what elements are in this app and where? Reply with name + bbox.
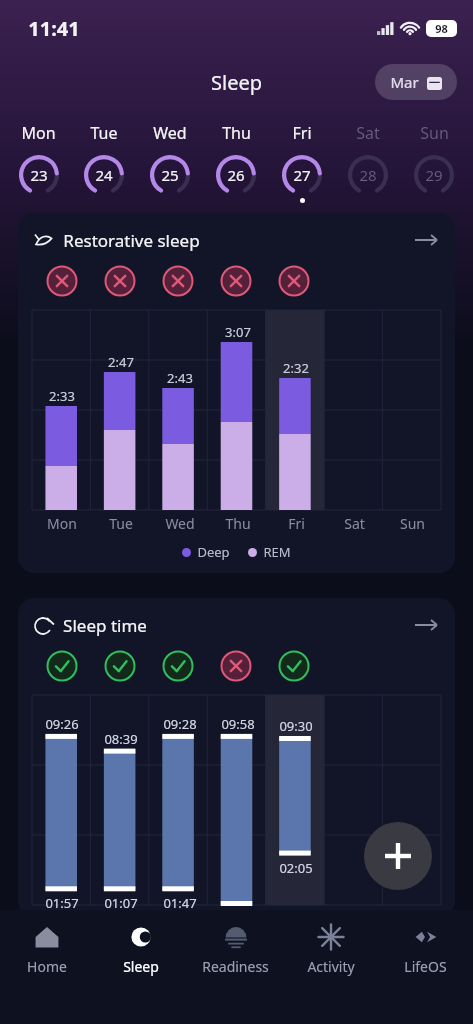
staticText: 2:43 — [167, 369, 193, 387]
staticText: Sat — [344, 514, 365, 533]
staticText: Thu — [222, 122, 251, 144]
staticText: 01:07 — [104, 894, 138, 912]
staticText: Tue — [109, 514, 133, 533]
staticText: 02:05 — [279, 859, 313, 877]
staticText: 29 — [425, 165, 443, 185]
button[interactable]: Open Sleep time — [413, 612, 439, 638]
button[interactable]: 23 — [6, 153, 71, 197]
staticText: Sleep — [211, 69, 262, 96]
button[interactable]: 24 — [71, 153, 137, 197]
staticText: 09:58 — [221, 715, 255, 733]
button[interactable]: 26 — [203, 153, 269, 197]
staticText: Mon — [21, 122, 56, 144]
button[interactable]: Sleep — [94, 924, 188, 1024]
button[interactable]: 25 — [137, 153, 203, 197]
button[interactable]: 27 — [269, 153, 335, 197]
staticText: 11:41 — [28, 15, 80, 42]
staticText: Readiness — [202, 957, 269, 976]
staticText: 09:28 — [163, 715, 197, 733]
staticText: 09:26 — [45, 715, 79, 733]
staticText: Fri — [292, 122, 312, 144]
staticText: Restorative sleep — [63, 229, 200, 252]
staticText: 2:33 — [49, 387, 75, 405]
button[interactable]: Sleep time — [18, 598, 455, 917]
staticText: Wed — [165, 514, 195, 533]
button[interactable]: LifeOS — [378, 924, 473, 1024]
staticText: Sun — [420, 122, 449, 144]
staticText: 2:47 — [108, 353, 134, 371]
staticText: Mon — [47, 514, 77, 533]
staticText: 28 — [359, 165, 377, 185]
staticText: Sleep — [123, 957, 159, 976]
staticText: Deep — [197, 543, 230, 561]
staticText: Activity — [307, 957, 355, 976]
button[interactable]: Restorative sleep — [18, 213, 455, 573]
staticText: Sun — [400, 514, 425, 533]
button[interactable]: 28 — [335, 153, 401, 197]
staticText: Sleep time — [63, 614, 147, 637]
staticText: 08:39 — [104, 730, 138, 748]
staticText: REM — [263, 543, 291, 561]
button[interactable]: Activity — [283, 924, 378, 1024]
staticText: Fri — [288, 514, 305, 533]
staticText: Mar — [390, 72, 419, 92]
staticText: 09:30 — [279, 717, 313, 735]
button[interactable]: Readiness — [188, 924, 283, 1024]
staticText: 2:32 — [283, 359, 309, 377]
staticText: 25 — [161, 165, 179, 185]
staticText: 3:07 — [225, 323, 251, 341]
staticText: Thu — [225, 514, 251, 533]
staticText: 98 — [435, 21, 448, 36]
button[interactable]: Open Restorative sleep — [413, 227, 439, 253]
button[interactable]: 29 — [401, 153, 467, 197]
button[interactable]: Mar — [375, 64, 457, 100]
staticText: 01:57 — [45, 894, 79, 912]
staticText: 01:47 — [163, 894, 197, 912]
button[interactable]: Home — [0, 924, 94, 1024]
staticText: Sat — [356, 122, 380, 144]
staticText: Wed — [153, 122, 187, 144]
staticText: 23 — [30, 165, 48, 185]
staticText: 27 — [293, 165, 311, 185]
staticText: Home — [27, 957, 67, 976]
button[interactable]: Add — [364, 822, 432, 890]
staticText: 24 — [95, 165, 113, 185]
staticText: 26 — [227, 165, 245, 185]
staticText: Tue — [90, 122, 118, 144]
staticText: LifeOS — [404, 957, 447, 976]
